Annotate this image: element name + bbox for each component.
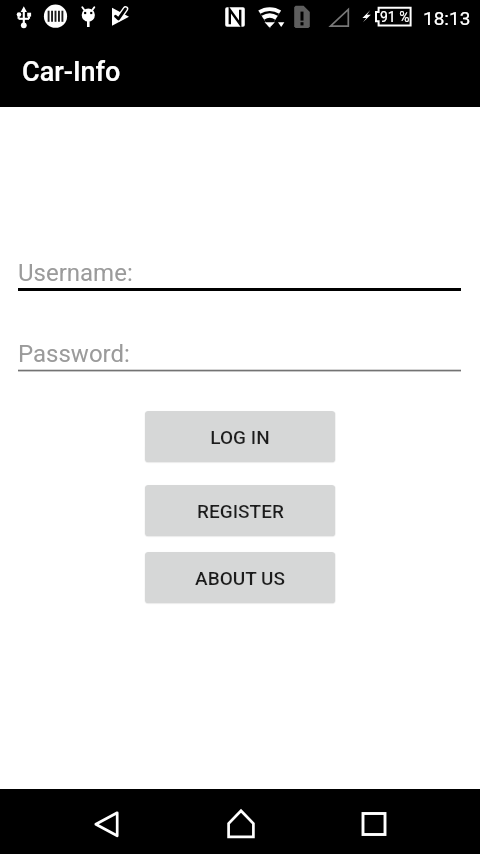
button[interactable]: Recent apps: [342, 789, 406, 853]
staticText: Password:: [18, 340, 130, 368]
button[interactable]: Username:: [18, 255, 461, 293]
staticText: LOG IN: [210, 426, 270, 448]
staticText: ABOUT US: [195, 567, 285, 589]
button[interactable]: REGISTER: [145, 485, 335, 536]
staticText: Username:: [18, 259, 133, 287]
staticText: 18:13: [423, 7, 471, 29]
button[interactable]: ABOUT US: [145, 552, 335, 603]
staticText: Car-Info: [22, 56, 121, 88]
button[interactable]: Back: [75, 789, 139, 853]
staticText: 91 %: [380, 9, 410, 25]
button[interactable]: LOG IN: [145, 411, 335, 462]
button[interactable]: Home: [209, 789, 273, 853]
button[interactable]: Password:: [18, 336, 461, 374]
staticText: REGISTER: [197, 500, 284, 522]
